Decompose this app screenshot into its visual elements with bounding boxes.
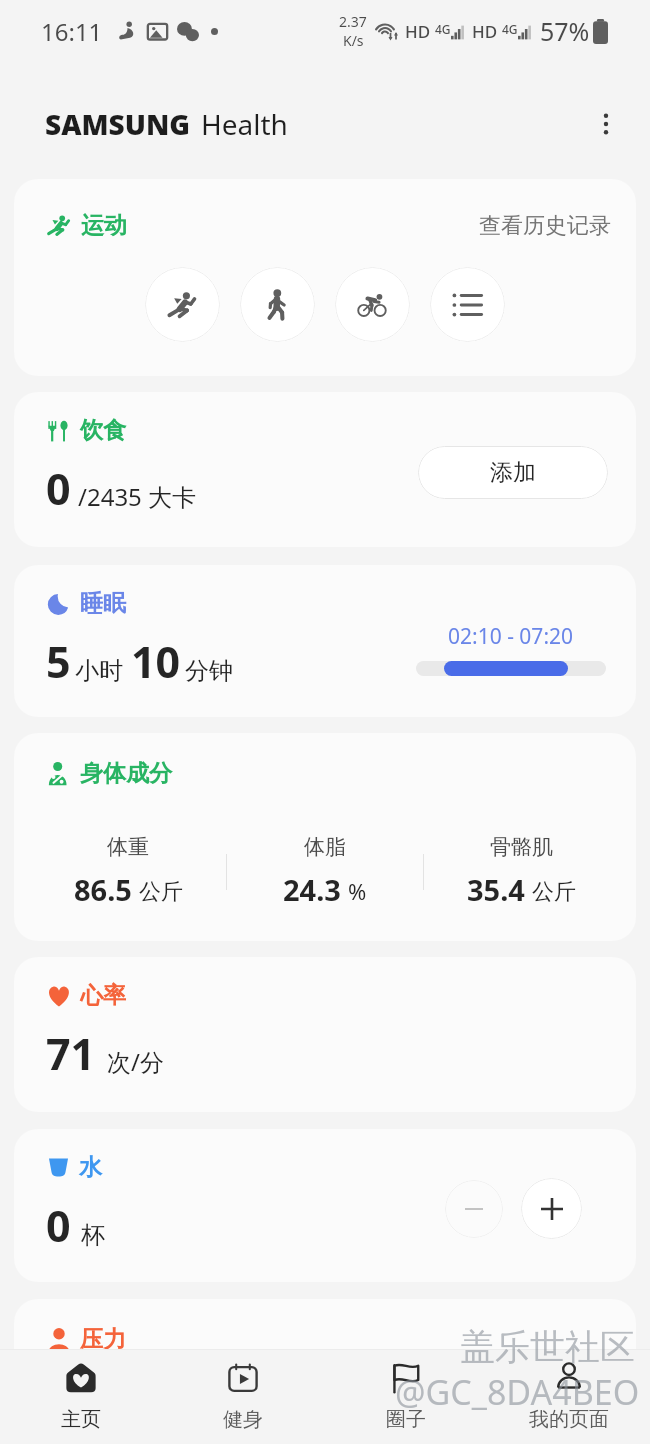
staticText: 压力	[80, 1325, 126, 1354]
staticText: 35.4	[467, 870, 525, 909]
staticText: 86.5	[74, 870, 132, 909]
staticText: 4G	[435, 21, 451, 37]
staticText: HD	[472, 20, 498, 43]
staticText: 盖乐世社区	[460, 1325, 635, 1369]
button[interactable]: More options	[584, 102, 628, 146]
button[interactable]: Activity	[240, 267, 315, 342]
staticText: 16:11	[41, 15, 103, 48]
button[interactable]: Activity	[145, 267, 220, 342]
button[interactable]: 压力	[14, 1299, 636, 1419]
button[interactable]: 添加	[418, 446, 608, 499]
button[interactable]: 水	[14, 1129, 636, 1282]
staticText: 心率	[80, 981, 126, 1010]
staticText: HD	[405, 20, 431, 43]
button[interactable]: Decrease water	[445, 1180, 503, 1238]
staticText: 公斤	[532, 878, 576, 906]
staticText: 4G	[502, 21, 518, 37]
staticText: 睡眠	[80, 589, 126, 618]
button[interactable]: 身体成分	[14, 733, 636, 941]
staticText: 次/分	[107, 1045, 164, 1078]
staticText: 查看历史记录	[479, 212, 611, 240]
staticText: 圈子	[386, 1407, 426, 1432]
staticText: 饮食	[80, 416, 126, 445]
staticText: 水	[79, 1153, 102, 1182]
staticText: 体重	[107, 834, 149, 860]
staticText: /2435 大卡	[78, 480, 197, 513]
staticText: K/s	[343, 31, 364, 50]
staticText: 0	[46, 1196, 71, 1255]
staticText: 10	[131, 632, 181, 691]
staticText: 我的页面	[529, 1407, 609, 1432]
staticText: 健身	[223, 1407, 263, 1432]
button[interactable]: 主页	[0, 1349, 162, 1444]
staticText: 骨骼肌	[490, 834, 553, 860]
staticText: 71	[46, 1024, 96, 1083]
button[interactable]: 心率	[14, 957, 636, 1112]
button[interactable]: 饮食	[14, 392, 636, 547]
staticText: 57%	[540, 14, 590, 48]
staticText: 小时	[75, 656, 123, 686]
button[interactable]: 睡眠	[14, 565, 636, 717]
button[interactable]: 健身	[162, 1349, 324, 1444]
staticText: 24.3	[283, 870, 341, 909]
staticText: Health	[201, 105, 288, 143]
staticText: 2.37	[339, 12, 367, 31]
staticText: 公斤	[139, 878, 183, 906]
staticText: 运动	[81, 211, 127, 240]
staticText: %	[348, 876, 367, 906]
button[interactable]: Activity	[335, 267, 410, 342]
staticText: 02:10 - 07:20	[448, 622, 574, 651]
staticText: 身体成分	[80, 759, 172, 788]
staticText: SAMSUNG	[45, 105, 190, 143]
staticText: 体脂	[304, 834, 346, 860]
staticText: 主页	[61, 1407, 101, 1432]
staticText: 0	[46, 459, 71, 518]
button[interactable]: Activity	[430, 267, 505, 342]
staticText: @GC_8DA4BEO	[395, 1369, 640, 1415]
button[interactable]: 我的页面	[487, 1349, 650, 1444]
button[interactable]: 运动	[14, 179, 636, 376]
staticText: 杯	[81, 1220, 105, 1250]
staticText: 添加	[490, 458, 536, 487]
button[interactable]: 圈子	[324, 1349, 487, 1444]
staticText: 分钟	[185, 656, 233, 686]
button[interactable]: Increase water	[521, 1178, 582, 1239]
staticText: 5	[46, 632, 71, 691]
